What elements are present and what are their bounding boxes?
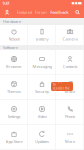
staticText: Forum (35, 10, 47, 15)
staticText: 9:41 (2, 1, 9, 6)
button[interactable]: Forum (33, 7, 49, 18)
staticText: Themes (7, 89, 21, 94)
staticText: Featured (17, 10, 32, 15)
button[interactable]: Search (72, 7, 83, 18)
staticText: Browser (6, 64, 22, 69)
button[interactable]: Feedback (49, 7, 70, 18)
staticText: More (65, 139, 75, 144)
staticText: Hardware (3, 19, 21, 24)
staticText: Music (64, 89, 75, 94)
staticText: Video (37, 114, 46, 119)
staticText: Contacts (62, 64, 77, 69)
button[interactable]: Updates (28, 125, 56, 150)
button[interactable]: Security (28, 75, 56, 100)
staticText: Software (3, 45, 18, 50)
staticText: Reboot (8, 36, 19, 42)
button[interactable]: More (56, 125, 84, 150)
staticText: Settings (7, 114, 20, 119)
staticText: Messaging (32, 64, 51, 69)
button[interactable]: Messaging (28, 50, 56, 75)
button[interactable]: Settings (0, 100, 28, 125)
staticText: Camera (62, 36, 77, 42)
button[interactable]: Contacts (56, 50, 84, 75)
button[interactable]: Browser (0, 50, 28, 75)
button[interactable]: App Store (0, 125, 28, 150)
button[interactable]: Battery (28, 25, 56, 45)
staticText: Battery (35, 36, 48, 42)
button[interactable]: Video (28, 100, 56, 125)
staticText: Feedback (50, 10, 68, 15)
button[interactable]: Music (56, 75, 84, 100)
staticText: Long press to (53, 79, 68, 86)
button[interactable]: Themes (0, 75, 28, 100)
button[interactable]: Reboot (0, 25, 28, 45)
button[interactable]: Phone (56, 100, 84, 125)
button[interactable]: Account (1, 7, 13, 18)
button[interactable]: Camera (56, 25, 84, 45)
staticText: reorder the tiles (53, 87, 70, 94)
button[interactable]: Featured (15, 7, 33, 18)
staticText: Updates (35, 139, 49, 144)
staticText: Security (35, 89, 49, 94)
staticText: App Store (5, 139, 22, 144)
staticText: Phone (65, 114, 75, 119)
